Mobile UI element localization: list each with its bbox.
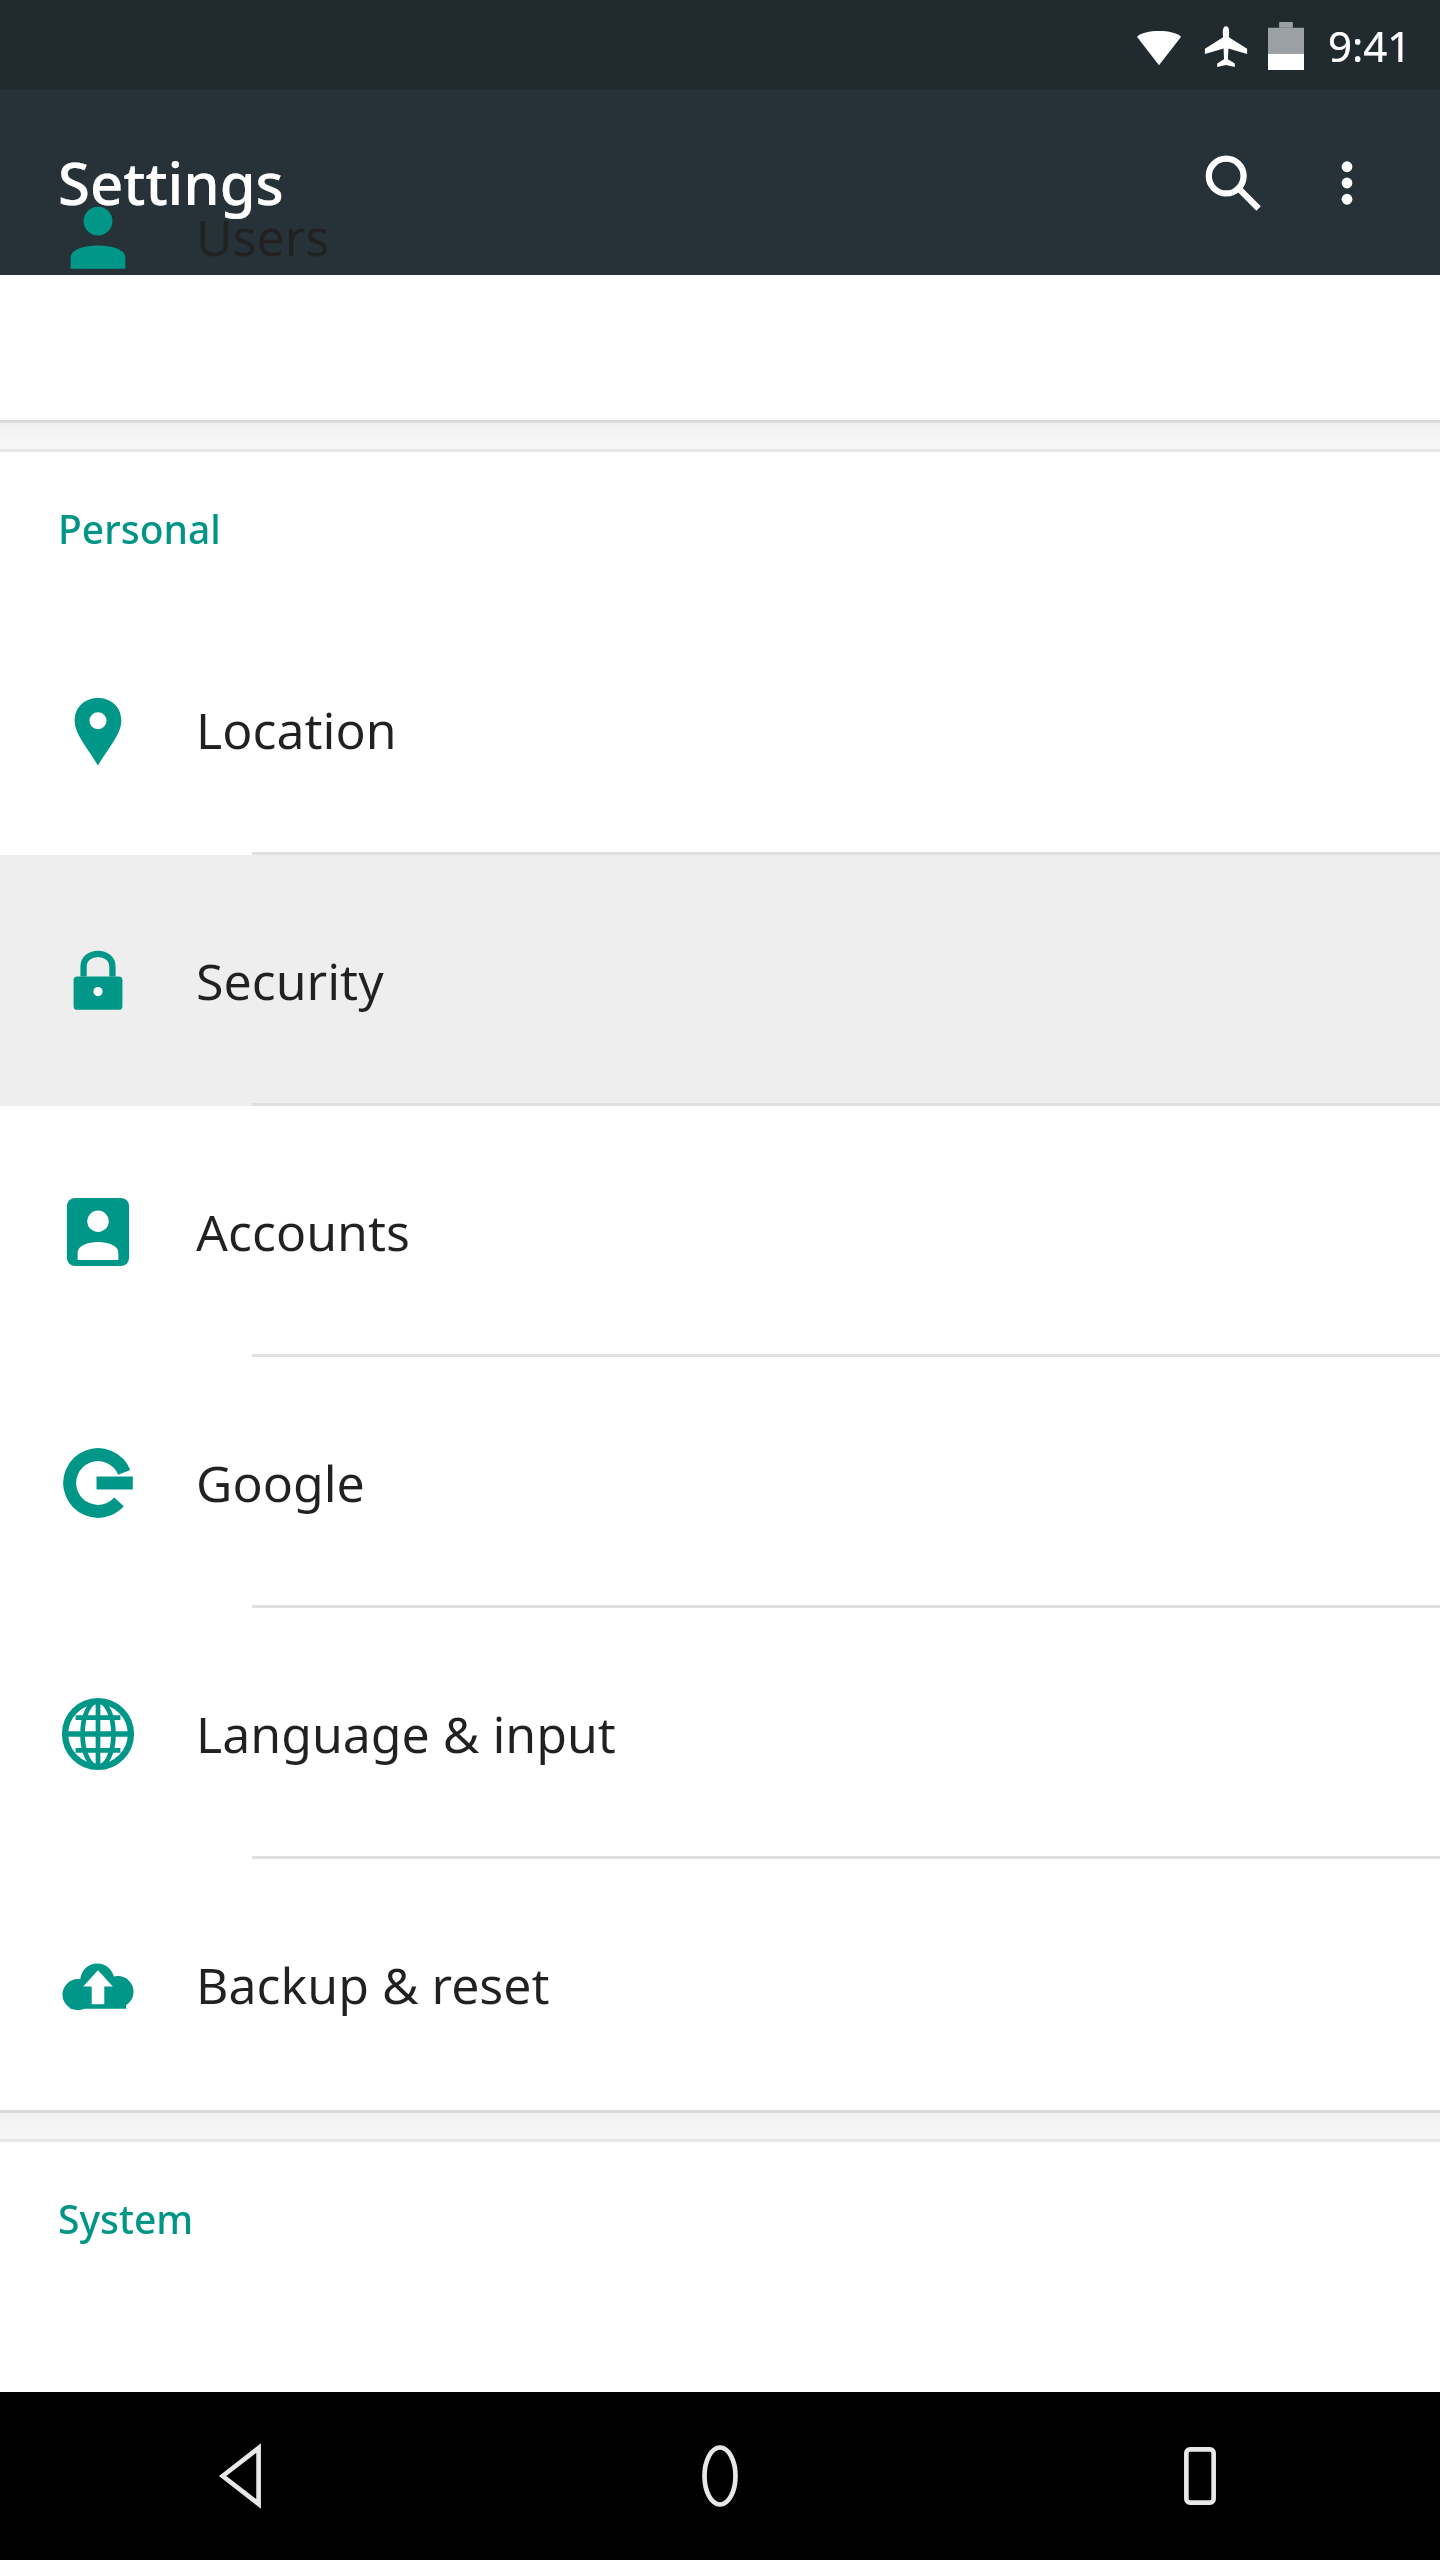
- button[interactable]: Home: [480, 2392, 960, 2560]
- button[interactable]: Security: [0, 855, 1440, 1106]
- button[interactable]: Back: [0, 2392, 480, 2560]
- button[interactable]: Recent apps: [960, 2392, 1440, 2560]
- staticText: Google: [196, 1449, 365, 1517]
- staticText: Settings: [58, 143, 284, 222]
- staticText: Personal: [58, 502, 221, 555]
- button[interactable]: Search: [1172, 123, 1292, 243]
- button[interactable]: More options: [1292, 128, 1402, 238]
- button[interactable]: Backup & reset: [0, 1859, 1440, 2110]
- staticText: Users: [196, 203, 330, 271]
- button[interactable]: Location: [0, 604, 1440, 855]
- staticText: Backup & reset: [196, 1951, 550, 2019]
- button[interactable]: Accounts: [0, 1106, 1440, 1357]
- staticText: System: [58, 2192, 194, 2245]
- staticText: Accounts: [196, 1198, 410, 1266]
- staticText: 9:41: [1328, 17, 1412, 74]
- staticText: Language & input: [196, 1700, 616, 1768]
- button[interactable]: Google: [0, 1357, 1440, 1608]
- button[interactable]: Language & input: [0, 1608, 1440, 1859]
- staticText: Security: [196, 947, 384, 1015]
- staticText: Location: [196, 696, 397, 764]
